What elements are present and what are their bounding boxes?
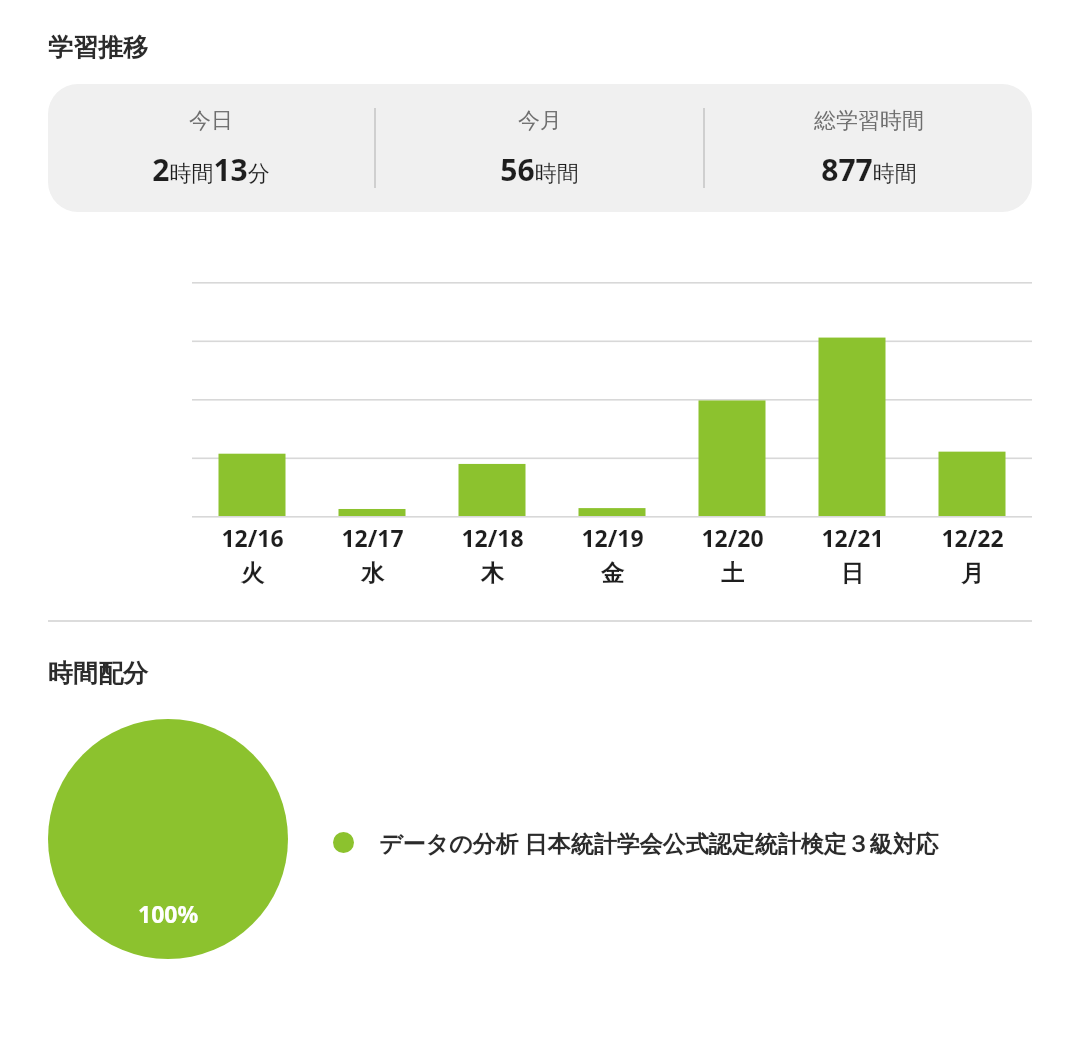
staticText: 土 — [721, 559, 744, 588]
staticText: 月 — [961, 559, 984, 588]
staticText: 100% — [138, 898, 199, 929]
staticText: 今日 — [189, 107, 233, 135]
staticText: 2時間13分 — [152, 149, 270, 190]
staticText: 877時間 — [821, 149, 917, 190]
button[interactable]: 今日 — [48, 84, 1032, 212]
staticText: 12/19 — [581, 522, 644, 553]
other: 時間配分 円グラフ 100% — [48, 719, 288, 959]
staticText: 金 — [601, 559, 624, 588]
button[interactable]: データの分析 日本統計学会公式認定統計検定３級対応 — [333, 827, 939, 858]
staticText: 56時間 — [500, 149, 579, 190]
staticText: 12/17 — [341, 522, 404, 553]
staticText: 学習推移 — [48, 32, 148, 63]
button[interactable]: 今月 — [376, 84, 703, 212]
staticText: 水 — [361, 559, 384, 588]
staticText: 12/21 — [821, 522, 884, 553]
staticText: 今月 — [518, 107, 562, 135]
button[interactable]: 今日 — [48, 84, 374, 212]
button[interactable]: 総学習時間 — [705, 84, 1032, 212]
staticText: データの分析 日本統計学会公式認定統計検定３級対応 — [379, 827, 939, 858]
staticText: 火 — [241, 559, 264, 588]
staticText: 時間配分 — [48, 658, 148, 689]
staticText: 日 — [841, 559, 864, 588]
staticText: 12/22 — [941, 522, 1004, 553]
staticText: 12/16 — [221, 522, 284, 553]
staticText: 木 — [481, 559, 504, 588]
staticText: 12/18 — [461, 522, 524, 553]
staticText: 総学習時間 — [814, 107, 924, 135]
staticText: 12/20 — [701, 522, 764, 553]
